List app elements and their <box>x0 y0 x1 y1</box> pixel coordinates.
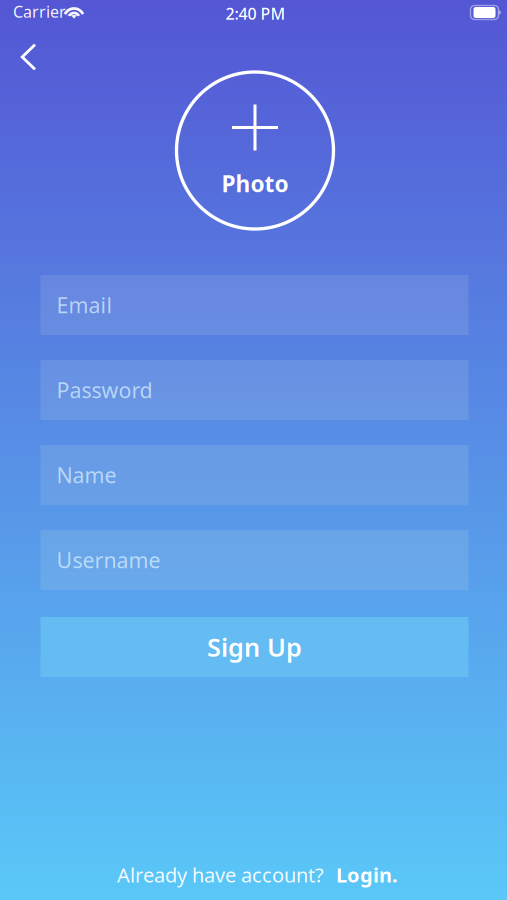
staticText: 2:40 PM <box>225 3 285 24</box>
staticText: Email <box>56 291 112 319</box>
staticText: Carrier <box>13 1 66 22</box>
staticText: Already have account? <box>117 861 324 888</box>
button[interactable]: Password <box>40 360 468 420</box>
staticText: Login. <box>336 861 398 888</box>
staticText: Photo <box>221 168 288 198</box>
button[interactable]: Back <box>0 0 58 90</box>
staticText: Password <box>56 376 152 404</box>
staticText: Name <box>56 461 116 489</box>
button[interactable]: Add Photo <box>175 72 332 229</box>
button[interactable]: Username <box>40 530 468 590</box>
staticText: Sign Up <box>207 630 302 664</box>
button[interactable]: Name <box>40 445 468 505</box>
staticText: Username <box>56 546 160 574</box>
button[interactable]: Already have account? <box>101 853 406 896</box>
button[interactable]: Email <box>40 275 468 335</box>
button[interactable]: Sign Up <box>40 617 468 677</box>
